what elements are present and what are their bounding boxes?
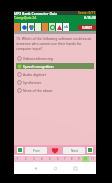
button[interactable]: Prev <box>25 147 47 154</box>
button[interactable]: Finish <box>87 147 93 153</box>
staticText: SUBMIT <box>82 26 93 30</box>
button[interactable]: 3 <box>30 156 38 162</box>
staticText: 9 <box>78 157 80 161</box>
button[interactable]: 2 <box>22 156 30 162</box>
button[interactable]: Tool <box>28 23 34 31</box>
staticText: Synthesizer <box>23 80 42 85</box>
button[interactable]: None of the above <box>16 87 94 93</box>
staticText: 6 <box>57 157 59 161</box>
button[interactable]: Next <box>63 147 85 154</box>
staticText: Speech recognition <box>23 64 54 69</box>
staticText: None of the above <box>23 88 53 93</box>
staticText: Videoconferencing <box>23 56 53 61</box>
button[interactable]: SUBMIT <box>78 25 96 30</box>
staticText: 1 <box>17 157 19 161</box>
button[interactable]: Speech recognition <box>16 63 94 69</box>
button[interactable]: 5 <box>46 156 54 162</box>
staticText: 4 <box>41 157 43 161</box>
staticText: Score: 0/11 <box>78 11 96 15</box>
button[interactable]: 7 <box>61 156 68 162</box>
staticText: Next <box>71 149 78 153</box>
staticText: 11 <box>91 157 94 161</box>
button[interactable]: 11 <box>89 156 96 162</box>
staticText: 7 <box>64 157 66 161</box>
button[interactable]: 4 <box>38 156 46 162</box>
staticText: CompQuiz 24 <box>14 15 37 20</box>
staticText: 3 <box>33 157 35 161</box>
other: Favourite <box>51 146 59 154</box>
staticText: 2 <box>25 157 27 161</box>
button[interactable]: Tool <box>56 23 62 31</box>
staticText: 10 <box>84 157 87 161</box>
button[interactable]: 10 <box>82 156 89 162</box>
button[interactable]: Tool <box>63 23 69 31</box>
staticText: 10. Which of the following software coul… <box>16 36 94 51</box>
staticText: 5 <box>49 157 51 161</box>
staticText: aA <box>64 25 68 29</box>
button[interactable]: Tool <box>49 23 55 31</box>
button[interactable]: 9 <box>75 156 82 162</box>
button[interactable]: Tool <box>21 23 27 31</box>
button[interactable]: Videoconferencing <box>16 55 94 61</box>
staticText: 0:15:30 <box>84 15 96 20</box>
button[interactable]: Stop <box>17 147 23 153</box>
button[interactable]: Recents <box>72 165 79 172</box>
button[interactable]: Audio digitizer <box>16 71 94 77</box>
button[interactable]: 8 <box>68 156 75 162</box>
staticText: MP3 Bank Computer Quiz <box>14 11 58 15</box>
staticText: 8 <box>71 157 73 161</box>
button[interactable]: Home <box>52 165 59 172</box>
button[interactable]: Back <box>32 165 39 172</box>
staticText: Audio digitizer <box>23 72 47 77</box>
button[interactable]: 6 <box>54 156 61 162</box>
staticText: Prev <box>33 149 40 153</box>
button[interactable]: 1 <box>14 156 22 162</box>
button[interactable]: Synthesizer <box>16 79 94 85</box>
